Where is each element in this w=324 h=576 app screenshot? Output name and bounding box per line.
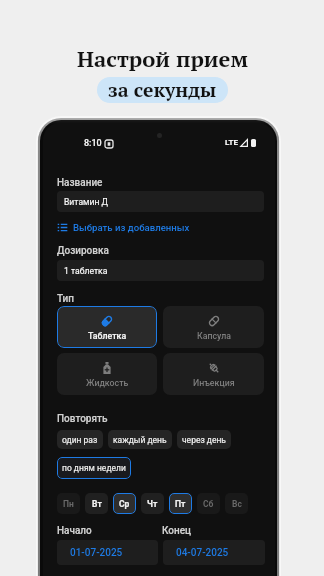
staticText: 1 таблетка <box>64 266 108 276</box>
button[interactable]: Ср <box>113 493 136 514</box>
staticText: LTE <box>225 138 238 147</box>
staticText: Название <box>57 177 103 189</box>
staticText: за секунды <box>108 77 217 103</box>
button[interactable]: каждый день <box>108 430 172 449</box>
staticText: каждый день <box>113 435 167 445</box>
button[interactable]: по дням недели <box>57 457 131 479</box>
staticText: Тип <box>57 293 75 305</box>
button[interactable]: Выбрать из добавленных <box>57 222 190 233</box>
staticText: Сб <box>203 499 214 509</box>
staticText: Пн <box>63 499 74 509</box>
staticText: Пт <box>175 499 186 509</box>
staticText: Настрой прием <box>77 44 248 73</box>
staticText: Капсула <box>197 331 231 341</box>
button[interactable]: Витамин Д <box>57 191 264 212</box>
button[interactable]: Чт <box>141 493 164 514</box>
staticText: через день <box>182 435 226 445</box>
staticText: Вт <box>92 499 102 509</box>
button[interactable]: 1 таблетка <box>57 260 264 281</box>
button[interactable]: 04-07-2025 <box>163 540 265 565</box>
staticText: Дозировка <box>57 245 109 257</box>
button[interactable]: Пн <box>57 493 80 514</box>
button[interactable]: Капсула <box>163 306 264 348</box>
staticText: Ср <box>119 499 130 509</box>
button[interactable]: один раз <box>57 430 103 449</box>
staticText: Конец <box>162 525 192 537</box>
staticText: Инъекция <box>193 378 235 388</box>
staticText: Вс <box>232 499 242 509</box>
staticText: Витамин Д <box>64 197 108 207</box>
button[interactable]: Жидкость <box>57 353 157 395</box>
staticText: 01-07-2025 <box>70 547 123 559</box>
staticText: Жидкость <box>86 378 129 388</box>
button[interactable]: Вс <box>225 493 248 514</box>
staticText: 04-07-2025 <box>176 547 229 559</box>
staticText: по дням недели <box>62 463 126 473</box>
button[interactable]: Пт <box>169 493 192 514</box>
staticText: один раз <box>62 435 98 445</box>
staticText: Начало <box>57 525 92 537</box>
staticText: Выбрать из добавленных <box>73 222 190 233</box>
button[interactable]: Инъекция <box>163 353 264 395</box>
button[interactable]: Таблетка <box>57 306 157 348</box>
button[interactable]: Вт <box>85 493 108 514</box>
staticText: Таблетка <box>88 331 127 341</box>
staticText: 8:10 <box>84 138 102 149</box>
button[interactable]: 01-07-2025 <box>57 540 158 565</box>
button[interactable]: Сб <box>197 493 220 514</box>
button[interactable]: через день <box>177 430 231 449</box>
staticText: Чт <box>147 499 158 509</box>
staticText: Повторять <box>57 413 108 425</box>
